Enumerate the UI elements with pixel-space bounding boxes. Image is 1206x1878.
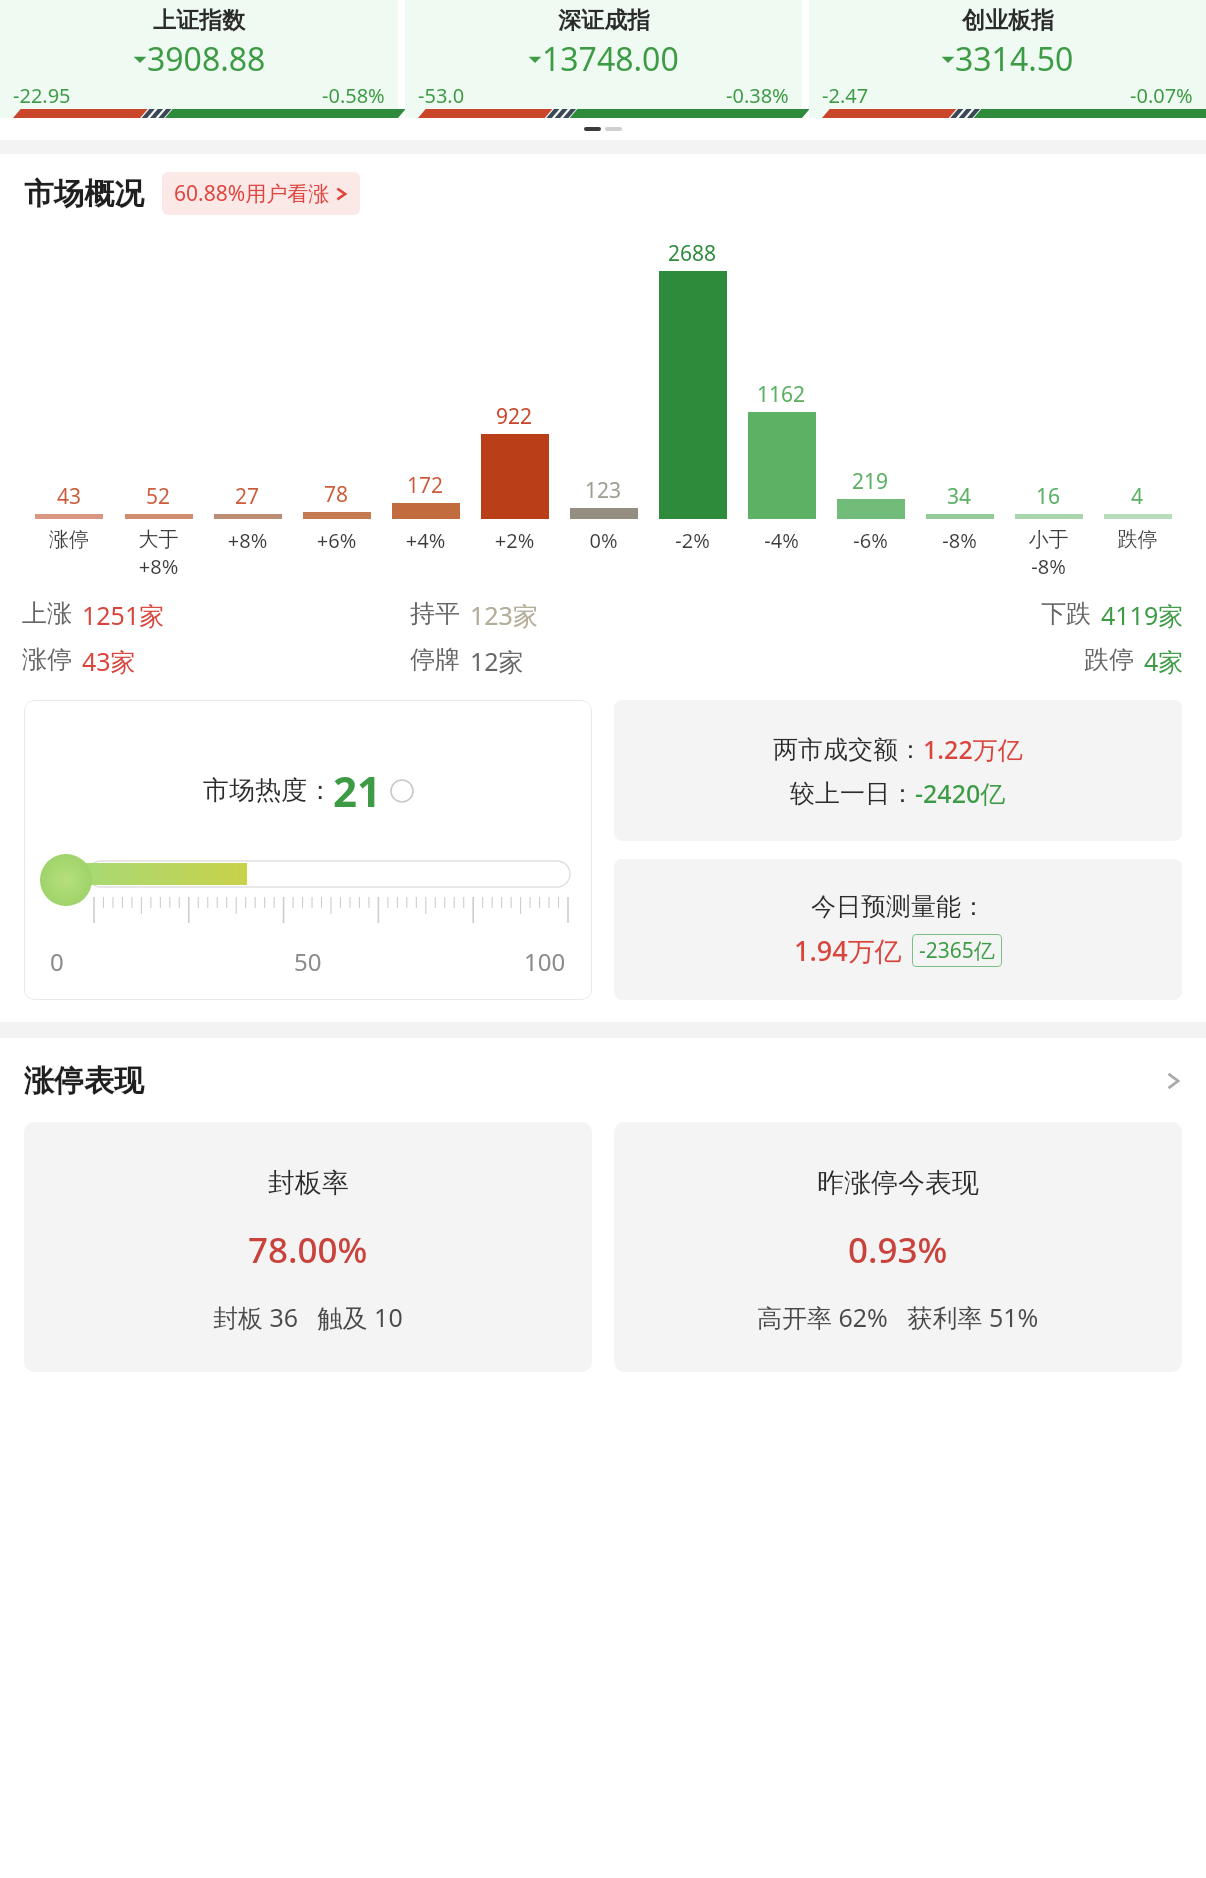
button[interactable]: 涨停表现 <box>0 1062 1206 1100</box>
staticText: +4% <box>381 527 470 554</box>
staticText: 50 <box>294 945 322 978</box>
staticText: 涨停 <box>22 644 72 675</box>
staticText: 1162 <box>757 380 806 409</box>
staticText: 涨停 <box>24 527 114 552</box>
staticText: 上涨 <box>22 598 72 629</box>
other: 查看涨停表现详情 <box>1164 1066 1182 1096</box>
staticText: 43 <box>57 482 82 511</box>
staticText: -2420亿 <box>915 776 1006 810</box>
button[interactable]: 封板率 <box>24 1122 592 1372</box>
staticText: 0 <box>50 945 64 978</box>
staticText: -2365亿 <box>919 936 995 965</box>
staticText: -2% <box>648 527 737 554</box>
staticText: 上证指数 <box>153 6 245 35</box>
staticText: 大于 +8% <box>114 527 203 580</box>
staticText: 今日预测量能： <box>811 891 986 922</box>
staticText: 创业板指 <box>962 6 1054 35</box>
staticText: 持平 <box>410 598 460 629</box>
staticText: 封板率 <box>268 1166 349 1200</box>
staticText: 100 <box>524 945 566 978</box>
staticText: 涨停表现 <box>24 1062 144 1100</box>
staticText: 昨涨停今表现 <box>817 1166 979 1200</box>
button[interactable]: 上证指数 <box>0 0 398 118</box>
staticText: -6% <box>826 527 915 554</box>
staticText: 跌停 <box>1084 644 1134 675</box>
staticText: 1251家 <box>82 598 165 632</box>
staticText: 78 <box>324 480 349 509</box>
staticText: 219 <box>852 467 889 496</box>
button[interactable]: 60.88%用户看涨 <box>162 172 360 215</box>
staticText: 12家 <box>470 644 524 678</box>
button[interactable]: 今日预测量能： <box>614 859 1182 1000</box>
staticText: 较上一日： <box>790 778 915 809</box>
staticText: 13748.00 <box>542 37 679 81</box>
button[interactable]: 两市成交额： <box>614 700 1182 841</box>
staticText: 922 <box>496 402 533 431</box>
staticText: 1.22万亿 <box>923 732 1023 766</box>
staticText: 市场热度： <box>203 774 333 807</box>
staticText: 停牌 <box>410 644 460 675</box>
staticText: -2.47 <box>822 82 869 109</box>
staticText: 跌停 <box>1093 527 1182 552</box>
staticText: -53.0 <box>418 82 465 109</box>
staticText: -8% <box>915 527 1004 554</box>
staticText: 123家 <box>470 598 538 632</box>
staticText: 60.88%用户看涨 <box>174 179 330 208</box>
staticText: 21 <box>333 762 382 819</box>
other: 市场热度说明 <box>390 779 414 803</box>
staticText: 3314.50 <box>955 37 1074 81</box>
staticText: 两市成交额： <box>773 734 923 765</box>
staticText: 下跌 <box>1041 598 1091 629</box>
staticText: 高开率 62% 获利率 51% <box>757 1300 1039 1334</box>
staticText: 43家 <box>82 644 136 678</box>
staticText: 深证成指 <box>558 6 650 35</box>
staticText: 小于 -8% <box>1004 527 1093 580</box>
staticText: 0% <box>559 527 648 554</box>
staticText: -0.58% <box>322 82 385 109</box>
staticText: 1.94万亿 <box>794 932 902 969</box>
button[interactable]: 创业板指 <box>809 0 1206 118</box>
staticText: -22.95 <box>13 82 71 109</box>
button[interactable]: 深证成指 <box>405 0 802 118</box>
staticText: 3908.88 <box>147 37 266 81</box>
staticText: 封板 36 触及 10 <box>213 1300 403 1334</box>
staticText: +6% <box>292 527 381 554</box>
staticText: -0.07% <box>1130 82 1193 109</box>
staticText: +2% <box>470 527 559 554</box>
staticText: 52 <box>146 482 171 511</box>
staticText: 172 <box>407 471 444 500</box>
staticText: 市场概况 <box>24 175 144 213</box>
staticText: 27 <box>235 482 260 511</box>
staticText: 16 <box>1036 482 1061 511</box>
staticText: 4家 <box>1144 644 1184 678</box>
staticText: 2688 <box>668 239 717 268</box>
staticText: +8% <box>203 527 292 554</box>
staticText: 0.93% <box>848 1226 948 1274</box>
staticText: 123 <box>585 476 622 505</box>
staticText: -0.38% <box>726 82 789 109</box>
staticText: -4% <box>737 527 826 554</box>
button[interactable]: 市场热度： <box>24 700 592 1000</box>
staticText: 4119家 <box>1101 598 1184 632</box>
staticText: 34 <box>947 482 972 511</box>
button[interactable]: 昨涨停今表现 <box>614 1122 1182 1372</box>
staticText: 78.00% <box>248 1226 368 1274</box>
staticText: 4 <box>1131 482 1144 511</box>
